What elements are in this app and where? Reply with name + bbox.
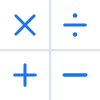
button[interactable]: Divide xyxy=(50,0,100,50)
button[interactable]: Subtract xyxy=(50,50,100,100)
button[interactable]: Multiply xyxy=(0,0,50,50)
button[interactable]: Add xyxy=(0,50,50,100)
